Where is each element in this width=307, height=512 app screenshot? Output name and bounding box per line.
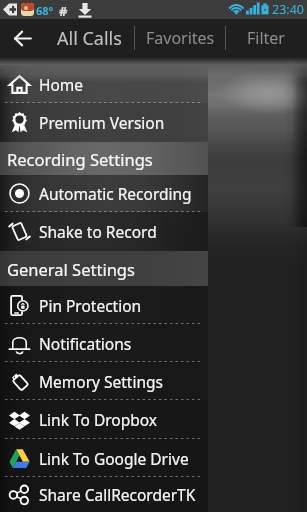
staticText: Link To Dropbox (39, 409, 158, 430)
button[interactable]: General Settings (0, 251, 208, 286)
button[interactable]: Share CallRecorderTK (0, 477, 208, 512)
button[interactable]: Notifications (0, 324, 208, 362)
staticText: Home (39, 74, 84, 95)
button[interactable]: Link To Dropbox (0, 400, 208, 439)
button[interactable]: Memory Settings (0, 362, 208, 400)
button[interactable]: Pin Protection (0, 286, 208, 324)
staticText: Filter (247, 27, 285, 49)
staticText: Notifications (39, 333, 132, 354)
staticText: 68° (36, 3, 54, 18)
staticText: Share CallRecorderTK (39, 484, 196, 505)
staticText: Memory Settings (39, 371, 163, 392)
staticText: Link To Google Drive (39, 448, 189, 469)
button[interactable]: Filter (226, 19, 306, 57)
button[interactable]: Shake to Record (0, 212, 208, 251)
button[interactable]: All Calls (44, 19, 134, 57)
button[interactable]: Premium Version (0, 103, 208, 142)
staticText: Premium Version (39, 112, 165, 133)
staticText: # (59, 2, 68, 20)
button[interactable]: Favorites (135, 19, 225, 57)
staticText: Recording Settings (7, 148, 153, 170)
button[interactable]: Home (0, 65, 208, 103)
staticText: Shake to Record (39, 221, 157, 242)
staticText: All Calls (57, 26, 122, 51)
button[interactable]: Recording Settings (0, 142, 208, 175)
button[interactable]: Back (0, 19, 44, 57)
staticText: 23:40 (272, 1, 304, 18)
staticText: Favorites (146, 27, 215, 49)
staticText: Automatic Recording (39, 183, 192, 204)
button[interactable]: Automatic Recording (0, 175, 208, 212)
staticText: Pin Protection (39, 295, 142, 316)
staticText: General Settings (7, 258, 135, 280)
button[interactable]: Link To Google Drive (0, 439, 208, 477)
